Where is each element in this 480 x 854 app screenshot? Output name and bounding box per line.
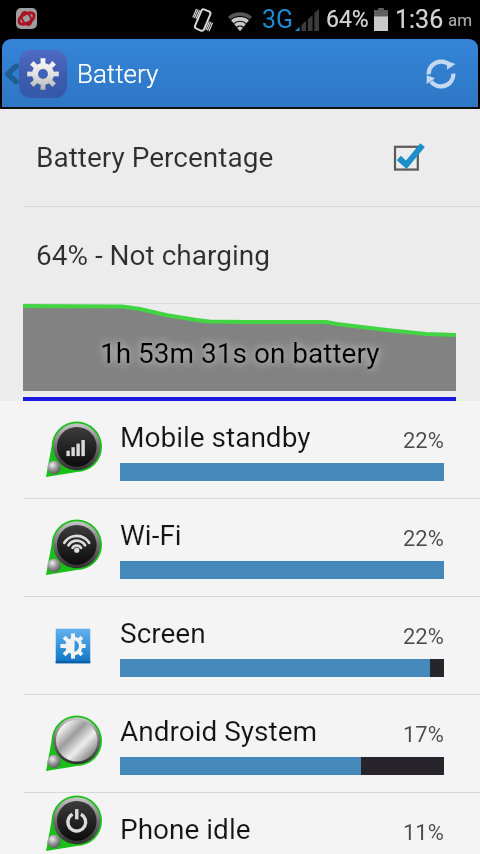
staticText: 1:36 [395, 5, 444, 34]
staticText: Battery Percentage [36, 141, 394, 174]
button[interactable]: Back [2, 39, 22, 109]
button[interactable]: Phone idle [0, 793, 480, 854]
staticText: 22% [403, 624, 444, 650]
staticText: 17% [403, 722, 444, 748]
staticText: Screen [120, 617, 403, 650]
button[interactable]: Mobile standby [0, 401, 480, 498]
staticText: 64% - Not charging [36, 239, 270, 272]
staticText: Battery [77, 59, 159, 89]
button[interactable]: Battery Percentage [0, 109, 480, 206]
staticText: 11% [403, 820, 444, 846]
button[interactable]: Refresh [415, 48, 467, 100]
button[interactable]: Wi-Fi [0, 499, 480, 596]
button[interactable]: Screen [0, 597, 480, 694]
staticText: Phone idle [120, 813, 403, 846]
staticText: Wi-Fi [120, 519, 403, 552]
staticText: 22% [403, 526, 444, 552]
staticText: 64% [326, 6, 369, 33]
staticText: 3G [262, 5, 294, 34]
button[interactable]: Android System [0, 695, 480, 792]
staticText: Mobile standby [120, 421, 403, 454]
staticText: am [448, 10, 473, 30]
staticText: 22% [403, 428, 444, 454]
staticText: 1h 53m 31s on battery [100, 337, 380, 370]
staticText: Android System [120, 715, 403, 748]
